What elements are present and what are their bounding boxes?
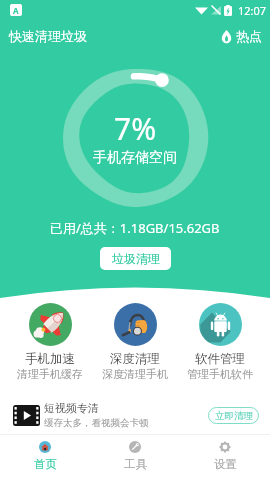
button[interactable]: 设置 bbox=[180, 436, 270, 471]
staticText: 深度清理手机 bbox=[102, 367, 168, 381]
button[interactable]: 首页 bbox=[0, 436, 90, 471]
button[interactable]: 手机加速 bbox=[13, 300, 87, 381]
staticText: 首页 bbox=[34, 457, 57, 471]
staticText: 热点 bbox=[236, 28, 262, 44]
button[interactable]: 热点 bbox=[213, 24, 270, 48]
staticText: 快速清理垃圾 bbox=[9, 28, 87, 44]
staticText: 缓存太多，看视频会卡顿 bbox=[44, 417, 149, 429]
staticText: 已用/总共：1.18GB/15.62GB bbox=[50, 219, 220, 237]
staticText: 深度清理 bbox=[110, 351, 160, 367]
staticText: 清理手机缓存 bbox=[17, 367, 83, 381]
staticText: 7% bbox=[114, 108, 157, 149]
staticText: 立即清理 bbox=[215, 410, 253, 422]
button[interactable]: 垃圾清理 bbox=[100, 247, 171, 270]
staticText: 手机存储空间 bbox=[93, 149, 177, 167]
staticText: 垃圾清理 bbox=[112, 251, 160, 266]
button[interactable]: 立即清理 bbox=[208, 407, 259, 424]
button[interactable]: 工具 bbox=[90, 436, 180, 471]
other: Video bbox=[13, 405, 40, 426]
staticText: 软件管理 bbox=[195, 351, 245, 367]
staticText: 短视频专清 bbox=[44, 401, 99, 415]
staticText: 手机加速 bbox=[25, 351, 75, 367]
staticText: 设置 bbox=[214, 457, 237, 471]
button[interactable]: 软件管理 bbox=[183, 300, 257, 381]
staticText: 12:07 bbox=[238, 3, 267, 18]
staticText: A bbox=[13, 5, 19, 16]
staticText: 管理手机软件 bbox=[187, 367, 253, 381]
button[interactable]: 深度清理 bbox=[98, 300, 172, 381]
staticText: 工具 bbox=[124, 457, 147, 471]
button[interactable]: Video bbox=[0, 396, 270, 434]
